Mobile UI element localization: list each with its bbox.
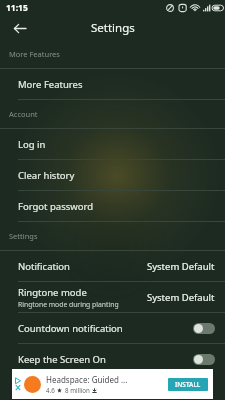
staticText: Account [9,109,38,119]
staticText: More Features [18,78,83,91]
button[interactable]: Countdown notification [0,313,225,343]
staticText: Settings [91,20,135,36]
staticText: Clear history [18,169,75,182]
staticText: Log in [18,138,46,151]
button[interactable]: More Features [0,69,225,99]
staticText: System Default [147,260,215,273]
staticText: Notification [18,260,70,273]
button[interactable]: Back [8,17,30,39]
button[interactable]: Ringtone mode [0,282,225,312]
staticText: Forgot password [18,200,94,213]
staticText: Settings [9,231,38,241]
button[interactable]: INSTALL [168,378,208,391]
button[interactable]: Forgot password [0,191,225,221]
button[interactable]: Headspace: Guided ... [12,369,213,399]
staticText: INSTALL [175,380,201,389]
staticText: 4.6 [46,386,55,394]
staticText: Headspace: Guided ... [46,374,128,385]
staticText: Ringtone mode during planting [18,300,119,309]
button[interactable]: Clear history [0,160,225,190]
staticText: System Default [147,291,215,304]
button[interactable]: Notification [0,251,225,281]
staticText: Countdown notification [18,322,123,335]
staticText: Ringtone mode [18,286,87,299]
staticText: 11:15 [6,2,28,14]
staticText: Keep the Screen On [18,353,106,366]
staticText: 8 million [65,386,90,394]
button[interactable]: Keep the Screen On [0,344,225,374]
staticText: More Features [9,49,60,59]
button[interactable]: Log in [0,129,225,159]
